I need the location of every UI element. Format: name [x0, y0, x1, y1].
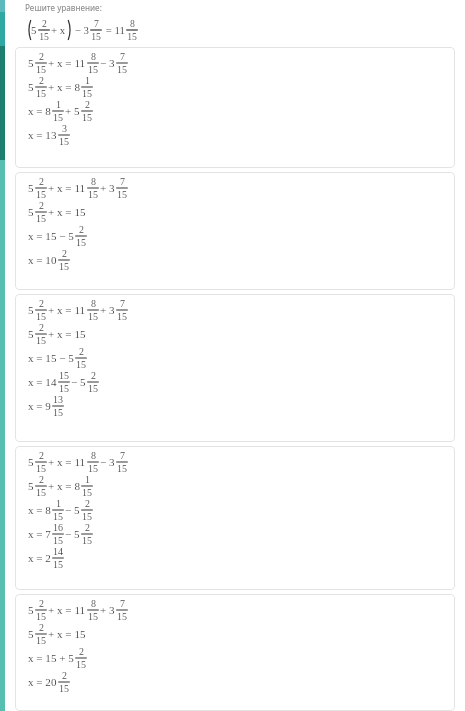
staticText: 15 — [82, 487, 92, 498]
staticText: + x = 8 — [48, 480, 80, 492]
button[interactable]: 5 — [15, 446, 455, 590]
staticText: 15 — [82, 112, 92, 123]
staticText: 5 — [28, 304, 34, 316]
staticText: 8 — [91, 450, 96, 461]
staticText: x = 20 — [28, 676, 57, 688]
staticText: 15 — [36, 88, 46, 99]
staticText: 2 — [79, 646, 84, 657]
staticText: 15 — [76, 237, 86, 248]
staticText: 2 — [39, 75, 44, 86]
staticText: 15 — [88, 463, 98, 474]
staticText: 5 — [28, 604, 34, 616]
staticText: 15 — [88, 189, 98, 200]
button[interactable]: 5 — [15, 294, 455, 442]
staticText: 2 — [39, 450, 44, 461]
staticText: 15 — [53, 511, 63, 522]
staticText: 15 — [117, 311, 127, 322]
staticText: x = 13 — [28, 129, 57, 141]
staticText: 5 — [28, 628, 34, 640]
staticText: 8 — [130, 18, 135, 29]
staticText: 7 — [94, 18, 99, 29]
staticText: 15 — [88, 383, 98, 394]
staticText: 8 — [91, 176, 96, 187]
staticText: + 3 — [100, 182, 115, 194]
staticText: 15 — [59, 261, 69, 272]
staticText: x = 7 — [28, 528, 51, 540]
staticText: + x = 11 — [48, 604, 86, 616]
staticText: 2 — [39, 200, 44, 211]
staticText: 13 — [53, 394, 63, 405]
staticText: 2 — [39, 322, 44, 333]
staticText: 2 — [39, 598, 44, 609]
staticText: + x = 11 — [48, 456, 86, 468]
staticText: 1 — [85, 75, 90, 86]
staticText: 15 — [36, 64, 46, 75]
staticText: 16 — [53, 522, 63, 533]
staticText: 15 — [59, 370, 69, 381]
staticText: − 3 — [100, 57, 115, 69]
staticText: x = 8 — [28, 504, 51, 516]
button[interactable]: 5 — [15, 594, 455, 711]
staticText: − 5 — [65, 528, 80, 540]
staticText: 2 — [91, 370, 96, 381]
staticText: 15 — [36, 611, 46, 622]
staticText: x = 8 — [28, 105, 51, 117]
staticText: 14 — [53, 546, 63, 557]
staticText: 15 — [53, 112, 63, 123]
staticText: 2 — [62, 248, 67, 259]
staticText: 15 — [36, 311, 46, 322]
staticText: 7 — [120, 298, 125, 309]
staticText: 15 — [82, 511, 92, 522]
staticText: x = 15 + 5 — [28, 652, 74, 664]
staticText: 7 — [120, 176, 125, 187]
staticText: − 3 — [72, 24, 89, 36]
staticText: 7 — [120, 450, 125, 461]
staticText: 5 — [28, 206, 34, 218]
staticText: 15 — [117, 611, 127, 622]
staticText: 15 — [127, 31, 137, 42]
staticText: 15 — [82, 535, 92, 546]
staticText: 5 — [28, 456, 34, 468]
staticText: + 5 — [65, 105, 80, 117]
staticText: − 5 — [71, 376, 86, 388]
staticText: 2 — [79, 346, 84, 357]
staticText: x = 15 − 5 — [28, 352, 74, 364]
staticText: 15 — [88, 64, 98, 75]
staticText: + x = 11 — [48, 182, 86, 194]
staticText: 15 — [36, 463, 46, 474]
staticText: 15 — [88, 311, 98, 322]
staticText: 15 — [76, 659, 86, 670]
staticText: 7 — [120, 51, 125, 62]
staticText: 15 — [39, 31, 49, 42]
staticText: 2 — [39, 622, 44, 633]
staticText: 15 — [76, 359, 86, 370]
button[interactable]: 5 — [15, 172, 455, 290]
staticText: 5 — [28, 480, 34, 492]
staticText: + x = 11 — [48, 57, 86, 69]
staticText: 15 — [117, 463, 127, 474]
staticText: x = 10 — [28, 254, 57, 266]
staticText: + 3 — [100, 604, 115, 616]
staticText: 5 — [28, 182, 34, 194]
staticText: 5 — [28, 81, 34, 93]
staticText: 15 — [59, 683, 69, 694]
button[interactable]: 5 — [15, 47, 455, 168]
staticText: x = 9 — [28, 400, 51, 412]
staticText: + x = 15 — [48, 628, 86, 640]
staticText: 15 — [36, 213, 46, 224]
staticText: 1 — [56, 498, 61, 509]
staticText: + x — [51, 24, 66, 36]
staticText: 2 — [79, 224, 84, 235]
staticText: + x = 15 — [48, 328, 86, 340]
staticText: 2 — [85, 99, 90, 110]
staticText: 3 — [62, 123, 67, 134]
staticText: 8 — [91, 298, 96, 309]
staticText: 2 — [62, 670, 67, 681]
staticText: 15 — [82, 88, 92, 99]
staticText: 15 — [53, 535, 63, 546]
staticText: 8 — [91, 598, 96, 609]
staticText: x = 14 — [28, 376, 57, 388]
staticText: 1 — [56, 99, 61, 110]
staticText: 7 — [120, 598, 125, 609]
staticText: Решите уравнение: — [25, 2, 102, 13]
